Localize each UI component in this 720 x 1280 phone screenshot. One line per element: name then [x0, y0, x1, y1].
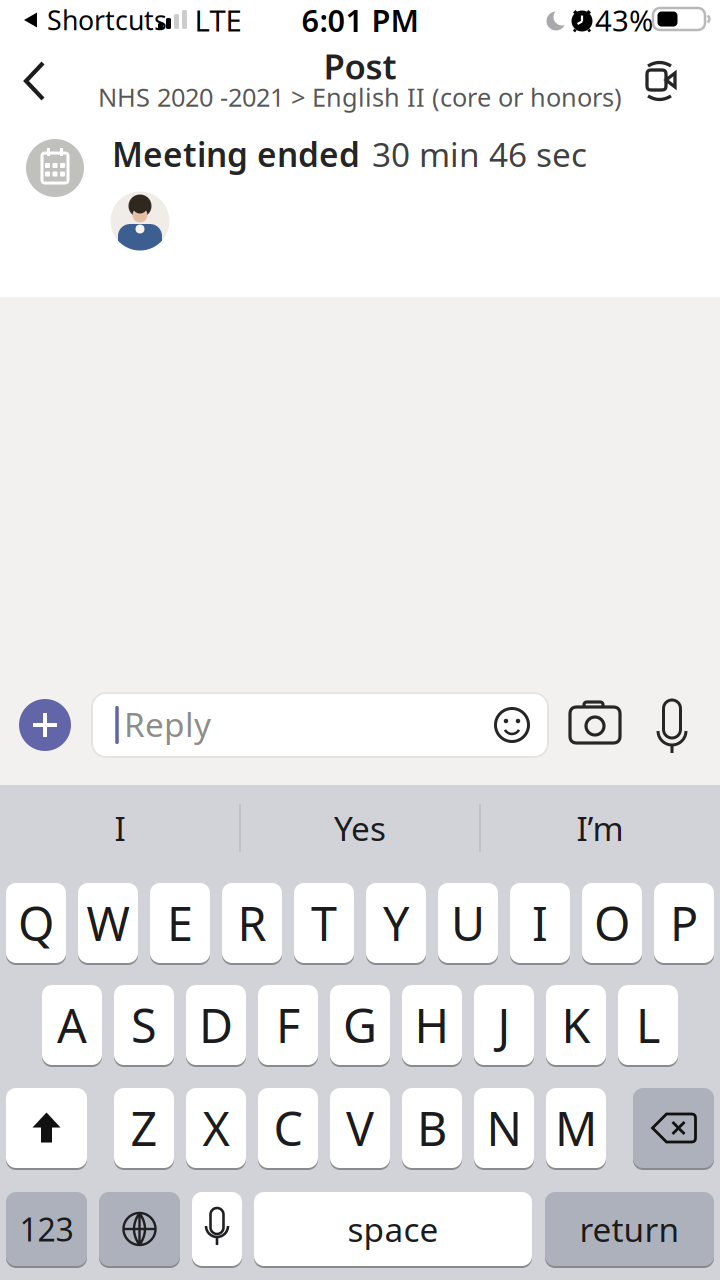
button[interactable]: P	[654, 882, 714, 964]
staticText: P	[670, 892, 698, 954]
staticText: 6:01 PM	[301, 0, 418, 40]
button[interactable]: K	[546, 984, 606, 1066]
staticText: I	[532, 892, 548, 954]
staticText: NHS 2020 -2021 > English II (core or hon…	[98, 80, 622, 114]
button[interactable]: L	[618, 984, 678, 1066]
staticText: 30 min 46 sec	[372, 132, 587, 176]
button[interactable]: U	[438, 882, 498, 964]
button[interactable]: Camera	[567, 701, 623, 749]
button[interactable]: J	[474, 984, 534, 1066]
button[interactable]: N	[474, 1087, 534, 1169]
button[interactable]: F	[258, 984, 318, 1066]
button[interactable]: O	[582, 882, 642, 964]
button[interactable]: Z	[114, 1087, 174, 1169]
staticText: K	[561, 994, 590, 1056]
button[interactable]: D	[186, 984, 246, 1066]
staticText: X	[202, 1097, 229, 1159]
button[interactable]: I	[510, 882, 570, 964]
staticText: J	[497, 994, 510, 1056]
button[interactable]: Meeting ended, 30 min 46 sec	[12, 126, 520, 266]
button[interactable]: Back	[23, 60, 49, 102]
button[interactable]: H	[402, 984, 462, 1066]
button[interactable]: W	[78, 882, 138, 964]
staticText: C	[273, 1097, 302, 1159]
button[interactable]: X	[186, 1087, 246, 1169]
button[interactable]: I	[2, 792, 238, 864]
button[interactable]: V	[330, 1087, 390, 1169]
button[interactable]: Microphone	[650, 698, 694, 758]
staticText: LTE	[194, 0, 241, 39]
button[interactable]: Meet now	[643, 59, 679, 103]
button[interactable]: Delete	[633, 1087, 714, 1169]
button[interactable]: Yes	[242, 792, 478, 864]
staticText: W	[86, 892, 129, 954]
button[interactable]: A	[42, 984, 102, 1066]
staticText: S	[131, 994, 157, 1056]
staticText: L	[636, 994, 660, 1056]
staticText: 123	[19, 1208, 73, 1250]
button[interactable]: Emoji	[492, 705, 532, 745]
staticText: space	[347, 1207, 438, 1251]
button[interactable]: Dictate	[192, 1191, 242, 1267]
staticText: M	[555, 1097, 597, 1159]
button[interactable]: G	[330, 984, 390, 1066]
staticText: I’m	[576, 806, 623, 850]
button[interactable]: Numbers	[6, 1191, 87, 1267]
button[interactable]: M	[546, 1087, 606, 1169]
button[interactable]: space	[254, 1191, 532, 1267]
button[interactable]: R	[222, 882, 282, 964]
button[interactable]: B	[402, 1087, 462, 1169]
button[interactable]: Reply	[92, 693, 548, 757]
staticText: U	[451, 892, 485, 954]
staticText: Y	[383, 892, 409, 954]
button[interactable]: Q	[6, 882, 66, 964]
staticText: Meeting ended	[112, 132, 360, 176]
staticText: V	[346, 1097, 374, 1159]
staticText: Reply	[124, 702, 211, 746]
staticText: B	[417, 1097, 447, 1159]
staticText: G	[343, 994, 377, 1056]
staticText: Z	[130, 1097, 157, 1159]
button[interactable]: Shift	[6, 1087, 87, 1169]
button[interactable]: Y	[366, 882, 426, 964]
staticText: E	[167, 892, 193, 954]
staticText: N	[486, 1097, 521, 1159]
staticText: O	[594, 892, 630, 954]
staticText: I	[114, 806, 125, 850]
staticText: T	[311, 892, 337, 954]
staticText: 43%	[595, 0, 653, 39]
staticText: A	[57, 994, 87, 1056]
button[interactable]: C	[258, 1087, 318, 1169]
staticText: F	[276, 994, 300, 1056]
staticText: Q	[18, 892, 54, 954]
staticText: return	[579, 1207, 679, 1251]
button[interactable]: Return to Shortcuts	[24, 3, 194, 37]
button[interactable]: Add	[19, 699, 71, 751]
staticText: Post	[323, 43, 396, 89]
button[interactable]: T	[294, 882, 354, 964]
button[interactable]: I'm	[482, 792, 718, 864]
staticText: H	[414, 994, 449, 1056]
button[interactable]: E	[150, 882, 210, 964]
staticText: R	[237, 892, 266, 954]
staticText: D	[199, 994, 233, 1056]
button[interactable]: Next keyboard	[99, 1191, 180, 1267]
staticText: Yes	[334, 806, 386, 850]
staticText: Shortcuts	[47, 2, 167, 38]
button[interactable]: return	[545, 1191, 714, 1267]
button[interactable]: S	[114, 984, 174, 1066]
